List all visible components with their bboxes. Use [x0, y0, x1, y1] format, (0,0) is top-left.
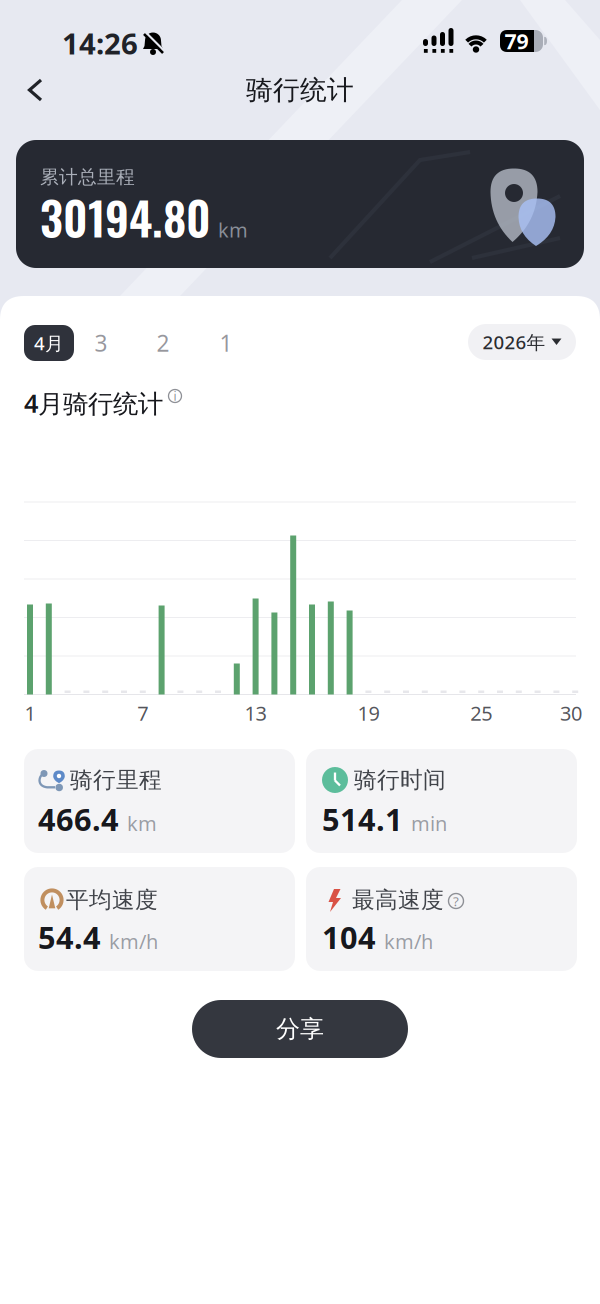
staticText: km [127, 810, 157, 836]
staticText: 30 [560, 700, 582, 726]
staticText: 104 [322, 917, 376, 957]
staticText: 79 [504, 27, 528, 55]
staticText: 19 [357, 700, 379, 726]
staticText: 4月骑行统计 [24, 386, 163, 420]
staticText: 13 [245, 700, 267, 726]
staticText: km [218, 216, 248, 243]
staticText: 2 [156, 328, 169, 358]
staticText: 1 [24, 700, 35, 726]
button[interactable]: 2 [143, 325, 183, 361]
staticText: 平均速度 [66, 886, 158, 914]
staticText: 骑行统计 [246, 74, 354, 106]
staticText: 25 [470, 700, 492, 726]
staticText: min [411, 810, 447, 836]
staticText: 最高速度 [352, 886, 444, 914]
staticText: 514.1 [322, 799, 403, 839]
staticText: 分享 [276, 1014, 324, 1044]
staticText: 1 [219, 328, 232, 358]
staticText: km/h [384, 928, 433, 954]
button[interactable]: 1 [206, 325, 246, 361]
button[interactable]: 分享 [192, 1000, 408, 1058]
staticText: 3 [94, 328, 107, 358]
staticText: 54.4 [38, 917, 101, 957]
button[interactable]: 3 [81, 325, 121, 361]
button[interactable]: 最高速度说明 [445, 890, 467, 912]
staticText: 14:26 [62, 23, 138, 62]
button[interactable]: 2026年 [468, 324, 576, 360]
button[interactable]: Back [15, 68, 59, 112]
staticText: i [173, 388, 176, 404]
button[interactable]: 4月 [24, 325, 74, 361]
staticText: 7 [137, 700, 148, 726]
button[interactable]: 说明 [165, 386, 185, 406]
staticText: km/h [109, 928, 158, 954]
staticText: 4月 [34, 331, 64, 355]
staticText: ? [453, 892, 459, 910]
staticText: 骑行时间 [354, 766, 446, 794]
staticText: 2026年 [482, 330, 545, 354]
staticText: 466.4 [38, 799, 119, 839]
staticText: 骑行里程 [70, 766, 162, 794]
staticText: 30194.80 [40, 183, 211, 251]
staticText: 累计总里程 [40, 165, 135, 188]
